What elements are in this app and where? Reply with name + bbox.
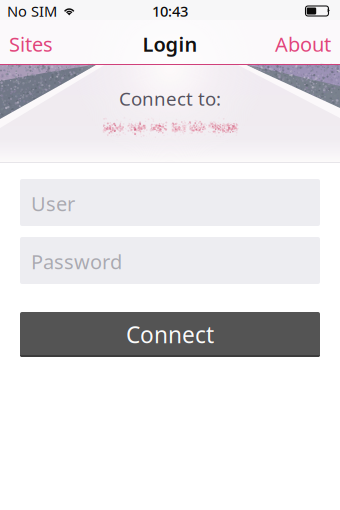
- staticText: Connect: [126, 319, 214, 349]
- staticText: No SIM: [7, 1, 57, 21]
- button[interactable]: Connect: [20, 312, 320, 357]
- staticText: About: [275, 31, 331, 57]
- staticText: Login: [142, 31, 197, 57]
- button[interactable]: Sites: [0, 20, 62, 64]
- staticText: User: [31, 190, 75, 217]
- staticText: Sites: [9, 31, 53, 57]
- button[interactable]: About: [266, 20, 340, 64]
- staticText: 10:43: [152, 1, 188, 21]
- staticText: Connect to:: [119, 86, 221, 111]
- staticText: Password: [31, 248, 122, 275]
